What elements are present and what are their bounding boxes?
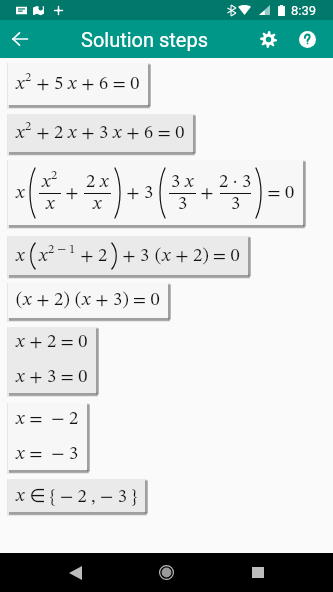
staticText: + 3 <box>118 247 154 266</box>
staticText: + 3 <box>122 184 158 203</box>
staticText: + 2 <box>32 124 68 143</box>
button[interactable]: Home <box>146 553 186 592</box>
staticText: x <box>46 195 55 214</box>
staticText: + 5 <box>32 75 68 94</box>
staticText: 3 <box>231 195 241 214</box>
button[interactable]: Back <box>55 553 95 592</box>
staticText: 2 − 1 <box>48 243 76 256</box>
staticText: 2 · 3 <box>219 173 252 192</box>
staticText: = − 2 <box>25 410 79 429</box>
staticText: = − 3 <box>25 445 79 464</box>
staticText: + <box>61 184 84 203</box>
staticText: x <box>68 124 77 143</box>
button[interactable]: Back <box>0 20 40 58</box>
button[interactable]: x <box>8 327 96 393</box>
staticText: x <box>16 368 25 387</box>
staticText: x <box>16 410 25 429</box>
staticText: x <box>16 75 25 94</box>
staticText: x <box>42 173 51 192</box>
staticText: x <box>162 247 171 266</box>
button[interactable]: ( <box>8 283 168 318</box>
button[interactable]: x <box>8 479 145 512</box>
staticText: ( <box>16 291 23 310</box>
staticText: + 2) = 0 <box>171 247 240 266</box>
button[interactable]: x <box>8 114 193 152</box>
staticText: ∈ { − 2 , − 3 } <box>25 485 137 507</box>
staticText: x <box>23 291 32 310</box>
staticText: x <box>113 124 122 143</box>
staticText: x <box>16 184 25 203</box>
staticText: x <box>16 124 25 143</box>
staticText: ( <box>75 291 82 310</box>
button[interactable]: x <box>8 403 87 470</box>
staticText: x <box>185 173 194 192</box>
staticText: x <box>16 445 25 464</box>
staticText: x <box>100 173 109 192</box>
button[interactable]: x <box>8 236 248 275</box>
staticText: = 0 <box>263 184 295 203</box>
staticText: 2 <box>86 173 100 192</box>
staticText: 2 <box>51 169 58 182</box>
button[interactable]: Settings <box>248 20 288 58</box>
staticText: x <box>68 75 77 94</box>
staticText: + 3 = 0 <box>25 368 88 387</box>
staticText: 3 <box>171 173 185 192</box>
button[interactable]: Help <box>287 20 327 58</box>
staticText: x <box>82 291 91 310</box>
staticText: 3 <box>178 195 188 214</box>
staticText: + 2 = 0 <box>25 333 88 352</box>
staticText: + 2 <box>76 247 108 266</box>
staticText: + <box>196 184 219 203</box>
staticText: + 6 = 0 <box>122 124 185 143</box>
button[interactable]: x <box>8 160 303 225</box>
staticText: + 6 = 0 <box>77 75 140 94</box>
staticText: x <box>39 247 48 266</box>
staticText: + 3) = 0 <box>91 291 160 310</box>
staticText: x <box>93 195 102 214</box>
button[interactable]: Recent apps <box>238 553 278 592</box>
staticText: 8:39 <box>291 3 317 18</box>
staticText: 2 <box>25 71 32 84</box>
staticText: Solution steps <box>81 28 209 51</box>
button[interactable]: x <box>8 63 148 105</box>
staticText: x <box>16 487 25 506</box>
staticText: 2 <box>25 120 32 133</box>
staticText: x <box>16 247 25 266</box>
staticText: x <box>16 333 25 352</box>
staticText: + 3 <box>77 124 113 143</box>
staticText: + 2) <box>32 291 70 310</box>
staticText: ( <box>155 247 162 266</box>
